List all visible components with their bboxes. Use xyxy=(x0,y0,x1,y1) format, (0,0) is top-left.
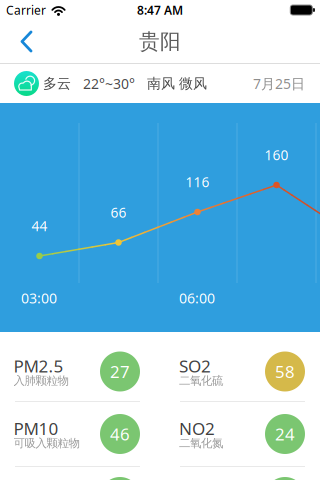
staticText: 贵阳 xyxy=(139,28,181,54)
staticText: 66 xyxy=(110,203,126,222)
staticText: 03:00 xyxy=(21,288,57,308)
staticText: PM2.5 xyxy=(13,354,63,377)
staticText: 58 xyxy=(275,360,295,383)
staticText: 116 xyxy=(185,173,209,191)
staticText: 可吸入颗粒物 xyxy=(13,436,79,450)
staticText: 06:00 xyxy=(179,288,215,308)
staticText: 160 xyxy=(264,146,288,164)
staticText: PM10 xyxy=(13,417,58,440)
button[interactable]: Back xyxy=(0,20,47,63)
staticText: 8:47 AM xyxy=(137,2,183,18)
staticText: 7月25日 xyxy=(253,74,305,93)
staticText: 多云 xyxy=(43,75,71,92)
staticText: Carrier xyxy=(6,2,46,18)
staticText: NO2 xyxy=(179,417,215,440)
staticText: 二氧化氮 xyxy=(179,436,223,450)
staticText: 南风 微风 xyxy=(147,75,207,92)
staticText: 27 xyxy=(110,360,130,383)
staticText: 二氧化硫 xyxy=(179,373,223,388)
staticText: SO2 xyxy=(179,354,211,377)
staticText: 46 xyxy=(110,423,130,445)
staticText: 24 xyxy=(275,423,295,445)
staticText: 44 xyxy=(31,217,47,235)
staticText: 22°~30° xyxy=(83,74,135,93)
staticText: 入肺颗粒物 xyxy=(13,373,68,388)
